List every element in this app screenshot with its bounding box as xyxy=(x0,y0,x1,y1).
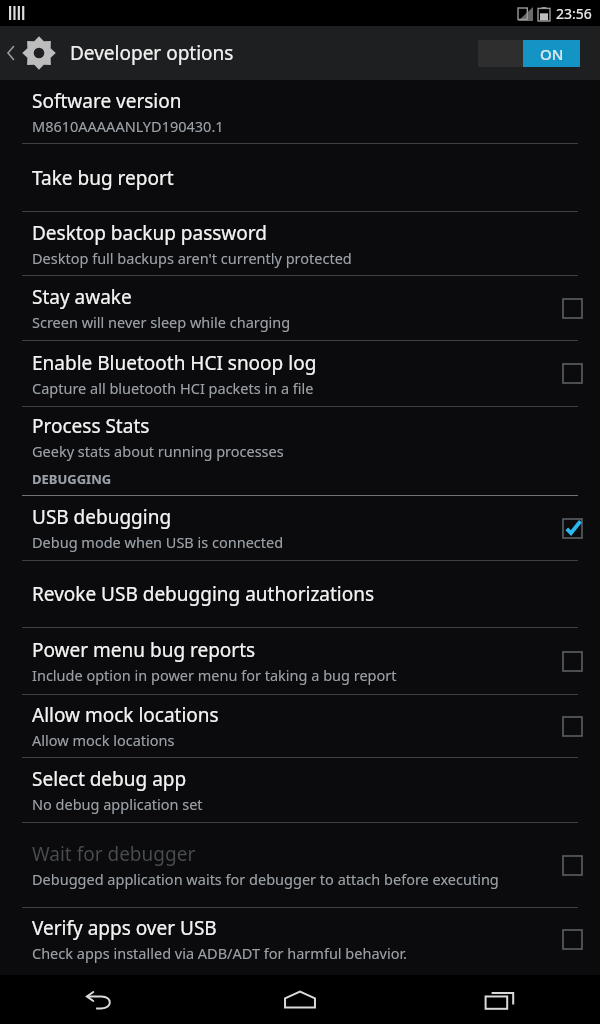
staticText: Take bug report xyxy=(32,165,174,191)
staticText: M8610AAAAANLYD190430.1 xyxy=(32,116,224,136)
staticText: No debug application set xyxy=(32,794,203,814)
button[interactable]: USB debugging xyxy=(0,496,600,560)
staticText: Verify apps over USB xyxy=(32,915,217,941)
staticText: Software version xyxy=(32,88,182,114)
button[interactable]: Revoke USB debugging authorizations xyxy=(0,561,600,627)
button[interactable]: Process Stats xyxy=(0,407,600,467)
button[interactable]: Enable Bluetooth HCI snoop log xyxy=(0,341,600,406)
staticText: Select debug app xyxy=(32,766,187,792)
button[interactable]: Stay awake xyxy=(0,276,600,340)
staticText: Allow mock locations xyxy=(32,730,175,750)
staticText: Screen will never sleep while charging xyxy=(32,312,291,332)
staticText: Process Stats xyxy=(32,413,150,439)
button[interactable]: Take bug report xyxy=(0,144,600,211)
staticText: Stay awake xyxy=(32,284,132,310)
staticText: USB debugging xyxy=(32,504,172,530)
staticText: Desktop full backups aren't currently pr… xyxy=(32,248,352,268)
staticText: Power menu bug reports xyxy=(32,637,256,663)
button[interactable]: Desktop backup password xyxy=(0,212,600,275)
staticText: Desktop backup password xyxy=(32,220,267,246)
staticText: Include option in power menu for taking … xyxy=(32,665,397,685)
button[interactable]: Select debug app xyxy=(0,758,600,822)
button[interactable]: Home xyxy=(200,975,400,1024)
button[interactable]: Navigate up, Developer options xyxy=(0,26,246,80)
staticText: Developer options xyxy=(70,40,234,66)
button[interactable]: Verify apps over USB xyxy=(0,908,600,970)
button[interactable]: Wait for debugger xyxy=(0,823,600,907)
button[interactable]: Allow mock locations xyxy=(0,695,600,757)
staticText: Debugged application waits for debugger … xyxy=(32,869,499,889)
button[interactable]: Software version xyxy=(0,80,600,143)
button[interactable]: Recent apps xyxy=(400,975,600,1024)
staticText: Revoke USB debugging authorizations xyxy=(32,581,375,607)
staticText: Debug mode when USB is connected xyxy=(32,532,284,552)
staticText: ON xyxy=(540,44,564,64)
staticText: DEBUGGING xyxy=(32,470,112,488)
staticText: Wait for debugger xyxy=(32,841,196,867)
button[interactable]: Power menu bug reports xyxy=(0,628,600,694)
staticText: Check apps installed via ADB/ADT for har… xyxy=(32,943,407,963)
button[interactable]: Developer options on xyxy=(478,40,580,67)
staticText: Allow mock locations xyxy=(32,702,219,728)
staticText: 23:56 xyxy=(556,4,592,23)
staticText: Capture all bluetooth HCI packets in a f… xyxy=(32,378,314,398)
button[interactable]: Back xyxy=(0,975,200,1024)
staticText: Geeky stats about running processes xyxy=(32,441,284,461)
staticText: Enable Bluetooth HCI snoop log xyxy=(32,350,317,376)
